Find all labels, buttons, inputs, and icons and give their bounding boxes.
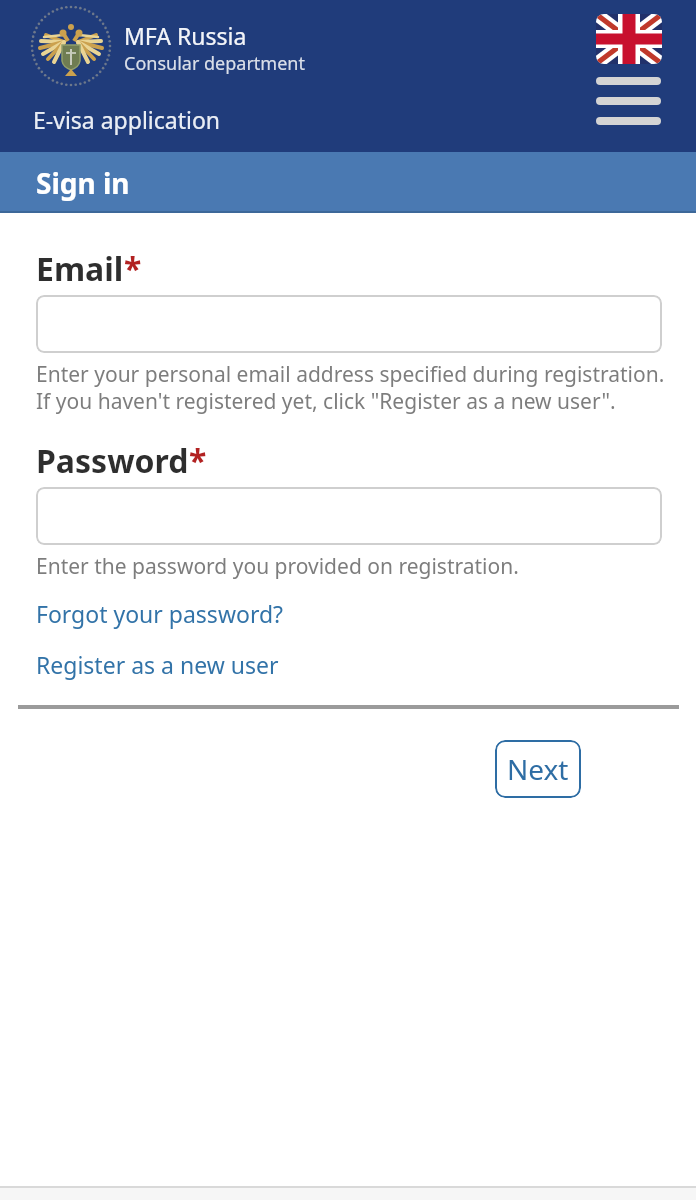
- button[interactable]: Register as a new user: [36, 649, 279, 680]
- staticText: MFA Russia: [124, 20, 247, 51]
- staticText: E-visa application: [33, 104, 221, 135]
- staticText: Email: [36, 247, 124, 291]
- staticText: Enter your personal email address specif…: [36, 360, 665, 415]
- staticText: *: [189, 439, 207, 483]
- staticText: Password: [36, 439, 189, 483]
- button[interactable]: Next: [495, 740, 581, 798]
- staticText: Next: [507, 750, 569, 788]
- button[interactable]: [596, 14, 662, 64]
- button[interactable]: [596, 77, 661, 125]
- staticText: Consular department: [124, 51, 305, 76]
- staticText: *: [124, 247, 142, 291]
- staticText: Enter the password you provided on regis…: [36, 552, 519, 581]
- button[interactable]: [36, 487, 662, 545]
- staticText: Sign in: [36, 164, 130, 202]
- button[interactable]: Forgot your password?: [36, 598, 284, 629]
- button[interactable]: [36, 295, 662, 353]
